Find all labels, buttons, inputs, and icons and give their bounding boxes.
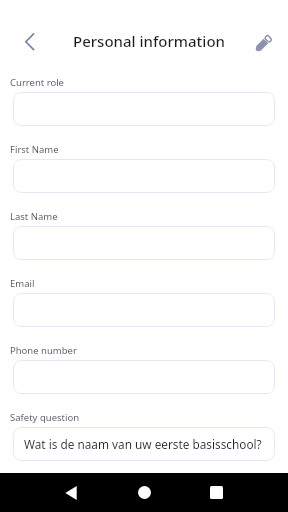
button[interactable] — [125, 473, 163, 512]
button[interactable] — [13, 293, 275, 327]
staticText: Phone number — [10, 344, 77, 357]
staticText: Wat is de naam van uw eerste basisschool… — [24, 436, 262, 452]
button[interactable] — [52, 473, 90, 512]
button[interactable]: Wat is de naam van uw eerste basisschool… — [13, 427, 275, 461]
button[interactable] — [13, 226, 275, 260]
staticText: First Name — [10, 143, 59, 156]
staticText: Personal information — [73, 31, 225, 51]
button[interactable] — [13, 360, 275, 394]
staticText: Safety question — [10, 411, 80, 424]
button[interactable] — [243, 26, 283, 62]
staticText: Email — [10, 277, 35, 290]
button[interactable] — [10, 24, 50, 60]
staticText: Last Name — [10, 210, 58, 223]
button[interactable] — [197, 473, 235, 512]
staticText: Current role — [10, 76, 64, 89]
button[interactable] — [13, 159, 275, 193]
button[interactable] — [13, 92, 275, 126]
